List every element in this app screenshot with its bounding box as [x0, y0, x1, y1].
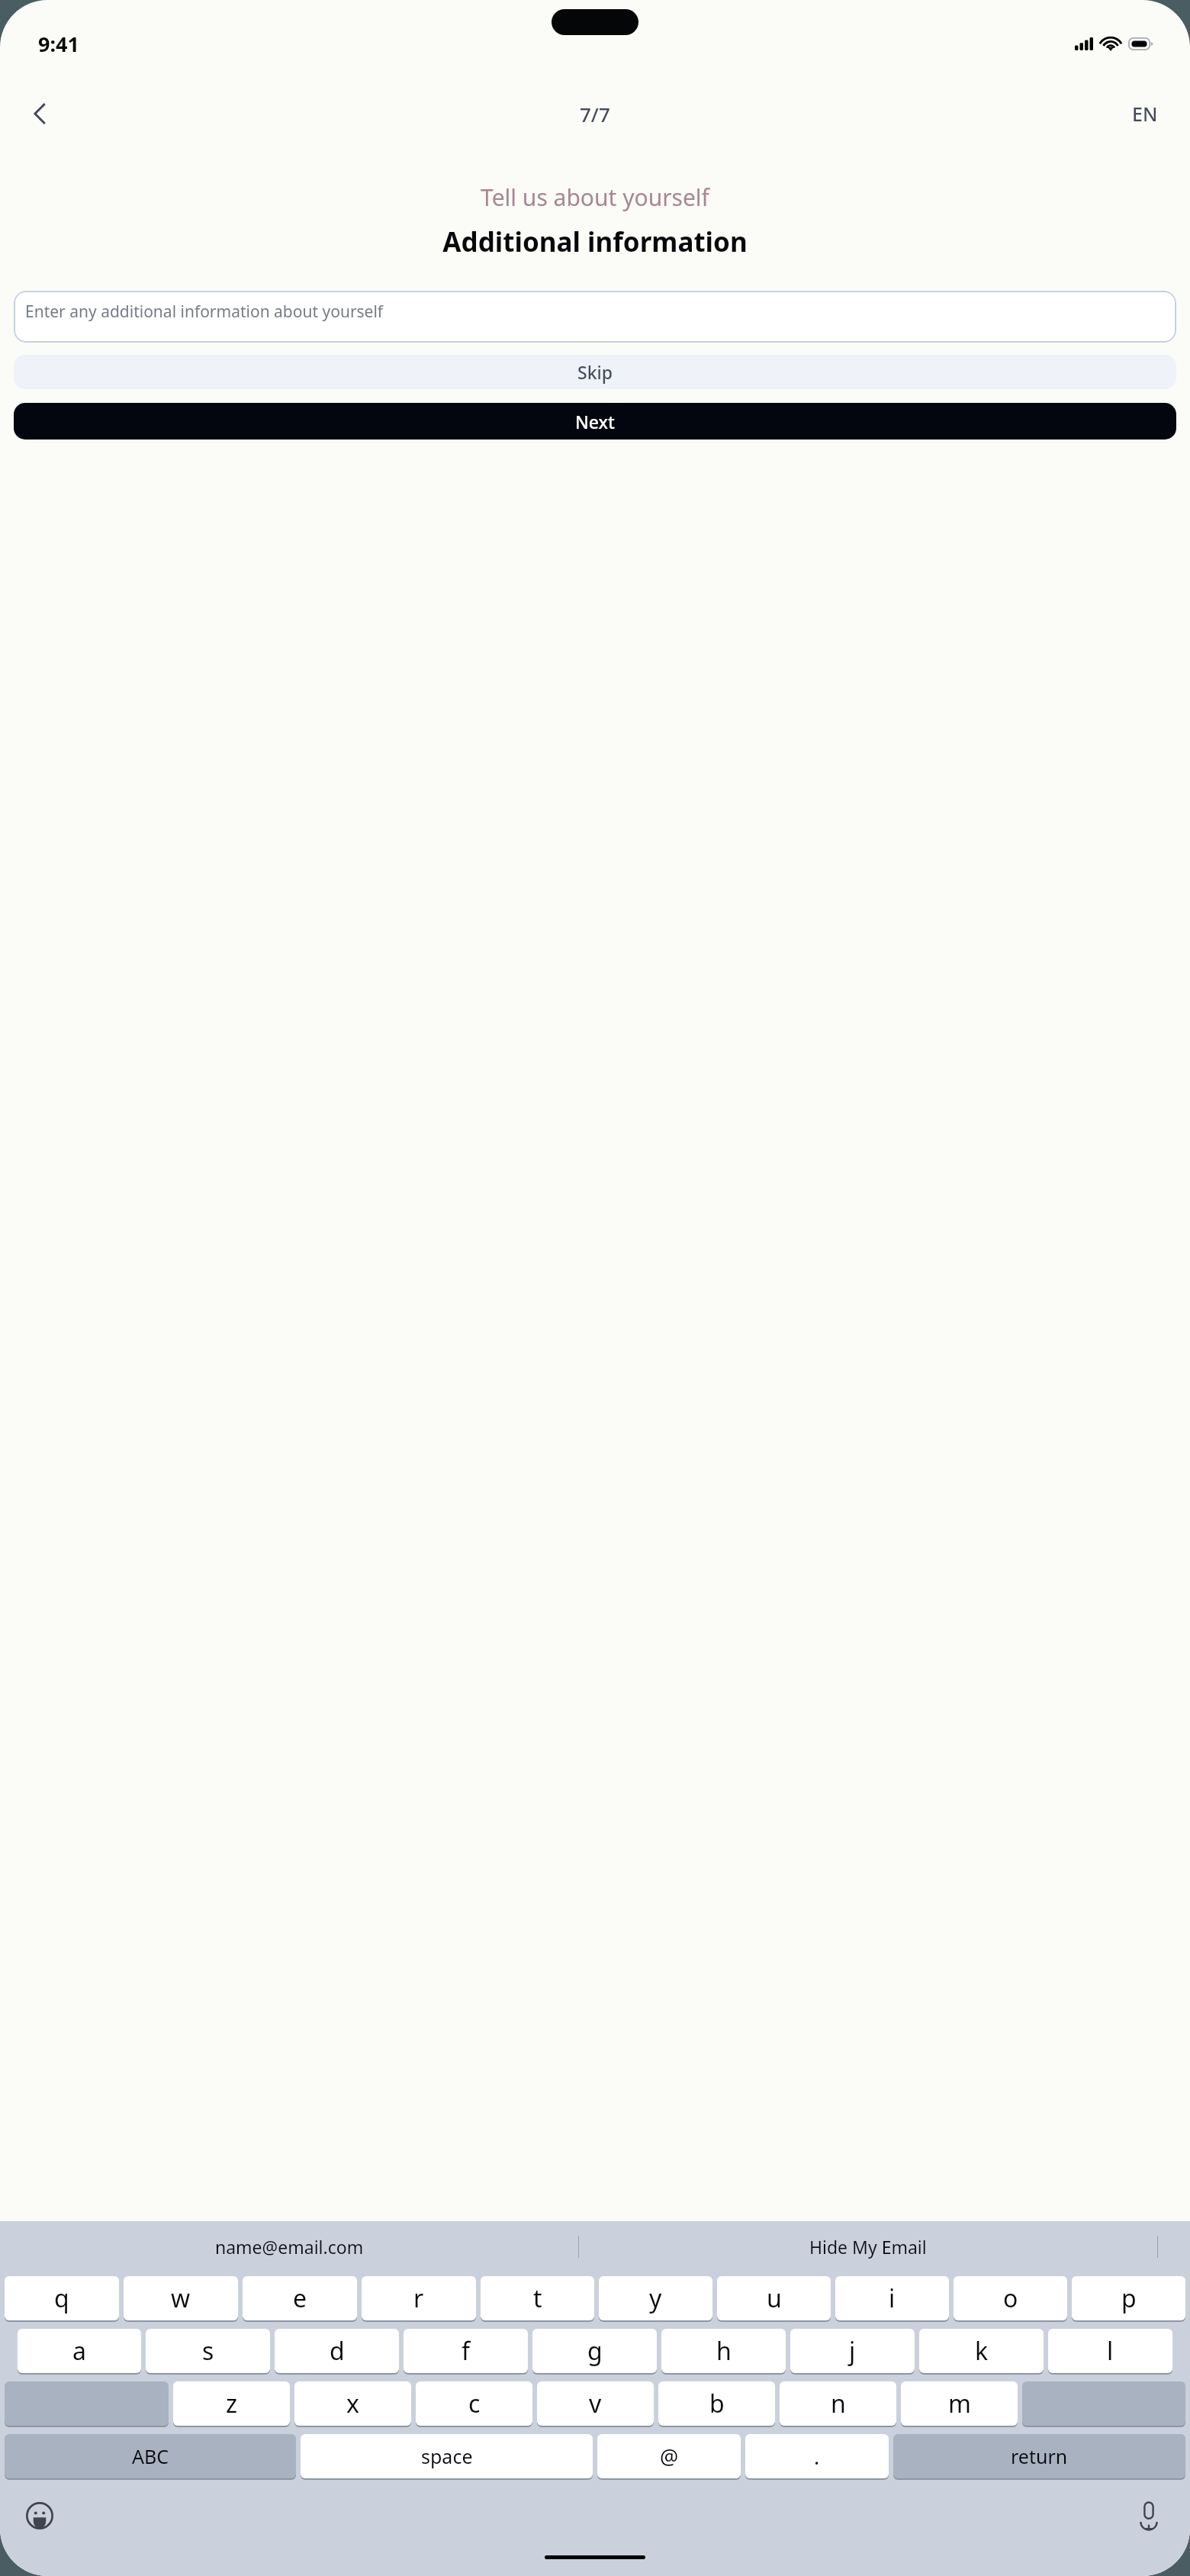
button[interactable]: h	[661, 2329, 786, 2373]
button[interactable]: t	[481, 2276, 594, 2320]
staticText: Next	[575, 410, 615, 433]
staticText: m	[948, 2387, 971, 2420]
staticText: 7/7	[580, 101, 610, 127]
button[interactable]: ABC	[5, 2434, 296, 2478]
staticText: q	[54, 2281, 69, 2315]
staticText: r	[413, 2281, 424, 2315]
button[interactable]: z	[173, 2381, 290, 2426]
button[interactable]: r	[362, 2276, 476, 2320]
staticText: Additional information	[442, 224, 748, 260]
button[interactable]: m	[901, 2381, 1018, 2426]
staticText: name@email.com	[215, 2235, 364, 2259]
staticText: b	[709, 2387, 725, 2420]
staticText: 9:41	[38, 30, 79, 58]
button[interactable]: name@email.com	[0, 2221, 578, 2272]
staticText: .	[814, 2442, 820, 2471]
button[interactable]: EN	[1127, 96, 1163, 131]
button[interactable]: x	[294, 2381, 411, 2426]
staticText: a	[72, 2334, 86, 2368]
staticText: t	[533, 2281, 542, 2315]
button[interactable]: space	[301, 2434, 593, 2478]
button[interactable]: g	[532, 2329, 657, 2373]
staticText: w	[171, 2281, 191, 2315]
staticText: @	[660, 2442, 679, 2471]
staticText: o	[1003, 2281, 1018, 2315]
button[interactable]: return	[893, 2434, 1185, 2478]
button[interactable]: Backspace	[1022, 2381, 1185, 2426]
button[interactable]: .	[745, 2434, 889, 2478]
staticText: g	[587, 2334, 603, 2368]
staticText: n	[831, 2387, 846, 2420]
staticText: s	[202, 2334, 214, 2368]
staticText: Hide My Email	[809, 2235, 927, 2259]
staticText: p	[1121, 2281, 1137, 2315]
button[interactable]: q	[5, 2276, 119, 2320]
staticText: j	[849, 2334, 856, 2368]
button[interactable]: l	[1048, 2329, 1172, 2373]
staticText: x	[346, 2387, 359, 2420]
staticText: z	[226, 2387, 238, 2420]
staticText: i	[889, 2281, 896, 2315]
staticText: y	[649, 2281, 662, 2315]
button[interactable]: d	[275, 2329, 399, 2373]
staticText: h	[716, 2334, 732, 2368]
staticText: Enter any additional information about y…	[25, 301, 384, 323]
button[interactable]: @	[597, 2434, 741, 2478]
button[interactable]: Hide My Email	[579, 2221, 1157, 2272]
button[interactable]: Dictation	[1127, 2494, 1170, 2537]
button[interactable]: Shift	[5, 2381, 169, 2426]
button[interactable]: Skip	[14, 355, 1176, 389]
button[interactable]: f	[404, 2329, 528, 2373]
button[interactable]: i	[835, 2276, 949, 2320]
staticText: EN	[1132, 101, 1158, 127]
staticText: l	[1107, 2334, 1114, 2368]
staticText: d	[330, 2334, 345, 2368]
button[interactable]: a	[18, 2329, 141, 2373]
button[interactable]: s	[146, 2329, 270, 2373]
button[interactable]: e	[243, 2276, 357, 2320]
staticText: f	[462, 2334, 471, 2368]
button[interactable]: c	[416, 2381, 532, 2426]
button[interactable]: y	[599, 2276, 712, 2320]
staticText: Tell us about yourself	[481, 182, 709, 213]
staticText: v	[589, 2387, 602, 2420]
button[interactable]: o	[954, 2276, 1067, 2320]
staticText: ABC	[132, 2443, 169, 2469]
button[interactable]: v	[537, 2381, 654, 2426]
staticText: e	[293, 2281, 307, 2315]
button[interactable]: b	[658, 2381, 775, 2426]
button[interactable]: n	[780, 2381, 896, 2426]
button[interactable]: Next	[14, 403, 1176, 440]
button[interactable]: p	[1072, 2276, 1185, 2320]
button[interactable]: w	[124, 2276, 238, 2320]
button[interactable]: Emoji	[18, 2494, 61, 2537]
staticText: return	[1011, 2443, 1068, 2469]
staticText: Skip	[577, 360, 613, 384]
staticText: u	[767, 2281, 782, 2315]
button[interactable]: j	[790, 2329, 915, 2373]
button[interactable]: k	[919, 2329, 1044, 2373]
staticText: space	[421, 2443, 473, 2469]
button[interactable]: Enter any additional information about y…	[14, 291, 1176, 343]
button[interactable]: u	[717, 2276, 831, 2320]
staticText: c	[468, 2387, 481, 2420]
button[interactable]: Back	[18, 92, 61, 135]
staticText: k	[975, 2334, 989, 2368]
